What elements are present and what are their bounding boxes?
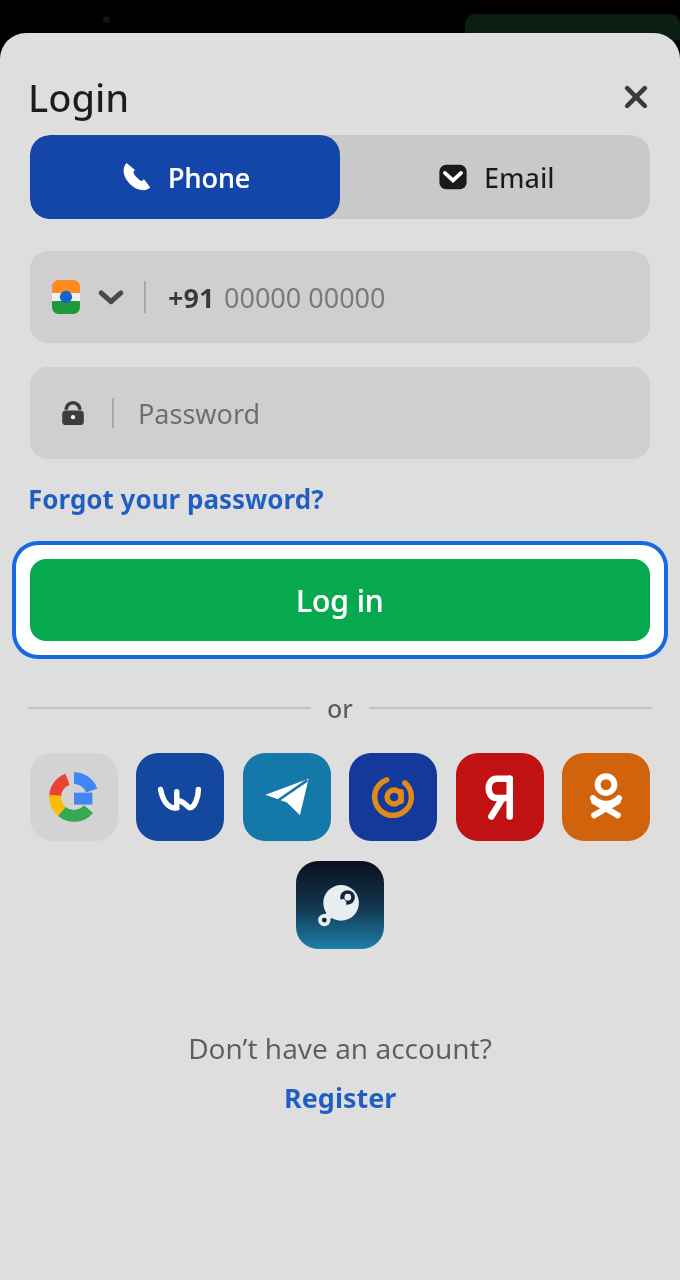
button[interactable]: Phone [30,135,340,219]
button[interactable]: Sign in with Odnoklassniki [562,753,650,841]
button[interactable]: Sign in with Steam [296,861,384,949]
button[interactable]: Log in [30,559,650,641]
staticText: or [327,691,353,725]
button[interactable]: Sign in with Telegram [243,753,331,841]
staticText: 00000 00000 [224,279,386,316]
staticText: +91 [168,279,215,316]
button[interactable]: Email [340,135,650,219]
staticText: Login [28,71,130,123]
button[interactable]: Sign in with Yandex [456,753,544,841]
button[interactable]: Register [284,1079,397,1116]
staticText: Forgot your password? [28,481,324,516]
button[interactable]: Forgot your password? [28,481,324,516]
staticText: Email [484,159,555,196]
staticText: Don’t have an account? [188,1029,492,1067]
button[interactable]: Sign in with VK [136,753,224,841]
button[interactable]: +91 [30,251,650,343]
button[interactable]: Sign in with Google [30,753,118,841]
button[interactable]: Close [610,71,662,123]
staticText: Log in [296,580,384,621]
staticText: Phone [168,159,251,196]
button[interactable]: Sign in with Mail.ru [349,753,437,841]
button[interactable]: Password [30,367,650,459]
staticText: Password [138,395,261,432]
staticText: Register [284,1079,397,1116]
